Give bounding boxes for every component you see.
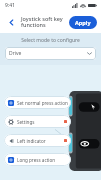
- button[interactable]: Left indicator: [4, 134, 71, 147]
- staticText: Joystick soft key functions: [21, 15, 66, 29]
- staticText: Drive: [9, 50, 87, 57]
- staticText: Select mode to configure: [21, 37, 80, 44]
- button[interactable]: Long press action: [4, 153, 71, 166]
- button[interactable]: Drive: [5, 47, 96, 60]
- staticText: Long press action: [17, 157, 68, 163]
- button[interactable]: Set normal press action: [4, 96, 71, 109]
- button[interactable]: Apply: [69, 16, 97, 29]
- staticText: Settings: [17, 119, 64, 125]
- staticText: Set normal press action: [17, 100, 68, 106]
- button[interactable]: Back: [4, 15, 18, 29]
- staticText: Apply: [75, 19, 91, 26]
- button[interactable]: Settings: [4, 115, 71, 128]
- staticText: Left indicator: [17, 138, 64, 144]
- staticText: 9:41: [5, 2, 15, 9]
